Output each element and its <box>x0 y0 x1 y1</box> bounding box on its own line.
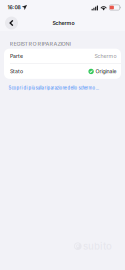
button[interactable]: Stato <box>4 64 121 79</box>
button[interactable]: Scopri di più sulla riparazione dello sc… <box>8 85 99 90</box>
staticText: subito <box>83 240 112 252</box>
button[interactable]: Parte <box>4 49 121 63</box>
staticText: REGISTRO RIPARAZIONI <box>9 40 70 47</box>
button[interactable]: Back <box>2 15 21 31</box>
staticText: Schermo <box>52 20 74 26</box>
staticText: Schermo <box>94 53 116 59</box>
staticText: 16:08 <box>7 4 20 10</box>
staticText: Originale <box>95 68 116 75</box>
staticText: Parte <box>10 53 23 59</box>
staticText: Stato <box>10 68 23 75</box>
staticText: Scopri di più sulla riparazione dello sc… <box>8 85 99 90</box>
